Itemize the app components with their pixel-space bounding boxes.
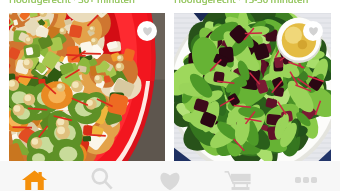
staticText: Hoofdgerecht · 30+ minuten: [9, 0, 135, 6]
button[interactable]: Hoofdgerecht · 30+ minuten: [9, 0, 165, 161]
button[interactable]: Home: [0, 161, 68, 191]
button[interactable]: Favorieten: [136, 161, 204, 191]
button[interactable]: Meer: [272, 161, 340, 191]
button[interactable]: Hoofdgerecht · 15-30 minuten: [174, 0, 331, 161]
button[interactable]: Favoriet: [137, 21, 157, 41]
button[interactable]: Favoriet: [303, 21, 323, 41]
button[interactable]: Zoeken: [68, 161, 136, 191]
button[interactable]: Winkelwagen: [204, 161, 272, 191]
staticText: Hoofdgerecht · 15-30 minuten: [174, 0, 309, 6]
